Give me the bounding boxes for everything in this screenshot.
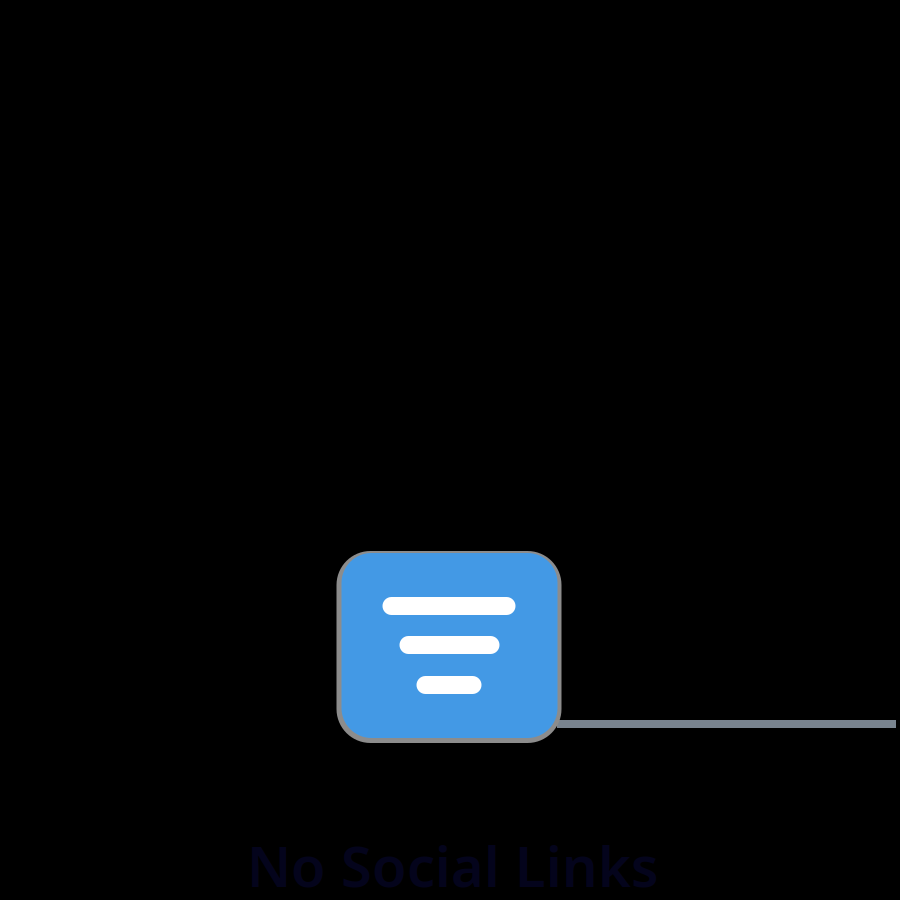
staticText: No Social Links [247,828,659,900]
